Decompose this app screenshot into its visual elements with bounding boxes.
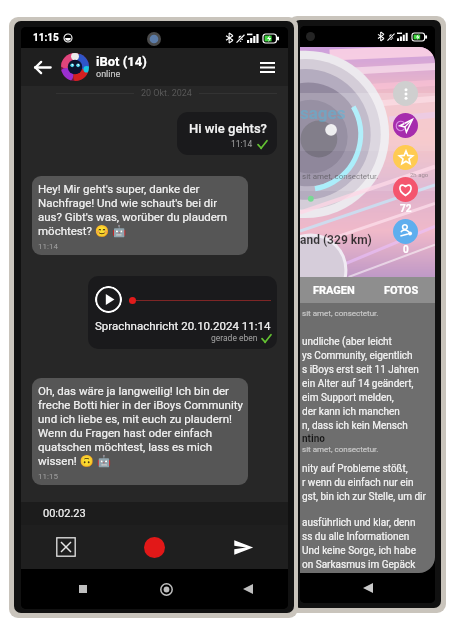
button[interactable]: Menu <box>254 54 280 80</box>
staticText: FOTOS <box>384 284 419 297</box>
button[interactable]: Send <box>393 113 418 138</box>
staticText: 2h ago <box>410 171 429 178</box>
staticText: FRAGEN <box>313 284 355 297</box>
button[interactable]: Share <box>393 219 418 244</box>
staticText: sit amet, consectetur. <box>302 172 379 181</box>
button[interactable]: Favourite <box>393 145 418 170</box>
staticText: 11:14 <box>231 139 253 149</box>
staticText: Hey! Mir geht's super, danke der Nachfra… <box>38 182 243 238</box>
button[interactable]: FRAGEN <box>300 277 367 303</box>
staticText: 11:15 <box>38 472 58 481</box>
button[interactable]: More options <box>393 81 418 106</box>
staticText: ausführlich und klar, denn ss du alle In… <box>302 517 416 571</box>
button[interactable]: Back <box>236 577 260 601</box>
staticText: 20 Okt. 2024 <box>141 88 192 99</box>
button[interactable]: Home <box>154 577 178 601</box>
staticText: nity auf Probleme stößt, r wenn du einfa… <box>302 463 426 503</box>
button[interactable]: Cancel recording <box>21 525 110 569</box>
staticText: sit amet, consectetur. <box>302 445 379 454</box>
staticText: 0 <box>403 244 409 256</box>
staticText: Sprachnachricht 20.10.2024 11:14 <box>95 319 271 332</box>
staticText: ntino <box>302 433 325 445</box>
staticText: Hi wie gehts? <box>189 121 267 136</box>
staticText: sages <box>300 103 346 123</box>
button[interactable]: Record <box>110 525 199 569</box>
staticText: 11:14 <box>38 242 58 251</box>
staticText: and (329 km) <box>300 233 372 247</box>
button[interactable]: Back <box>29 54 55 80</box>
staticText: gerade eben <box>211 333 258 343</box>
button[interactable]: Back <box>358 578 378 598</box>
button[interactable]: FOTOS <box>367 277 435 303</box>
staticText: 11:15 <box>33 32 59 44</box>
staticText: online <box>96 69 121 80</box>
button[interactable]: Recents <box>71 577 95 601</box>
staticText: 72 <box>400 203 412 215</box>
staticText: 00:02.23 <box>43 507 86 520</box>
staticText: iBot (14) <box>96 54 147 69</box>
button[interactable]: Send <box>199 525 288 569</box>
staticText: sit amet, consectetur. <box>302 309 379 318</box>
staticText: undliche (aber leicht ys Community, eige… <box>302 336 419 432</box>
staticText: Oh, das wäre ja langweilig! Ich bin der … <box>38 384 243 468</box>
button[interactable]: Play voice message <box>95 286 122 313</box>
button[interactable]: Like <box>393 177 418 202</box>
